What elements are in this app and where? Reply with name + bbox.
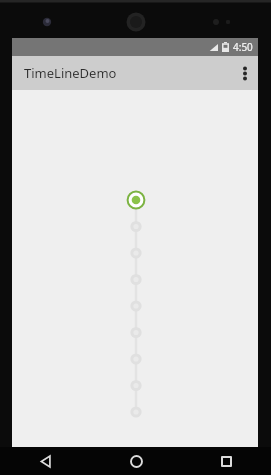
button[interactable]: Timeline start node [116, 182, 156, 218]
button[interactable]: More options [232, 56, 258, 90]
staticText: TimeLineDemo [24, 64, 117, 82]
staticText: 4:50 [233, 40, 253, 54]
button[interactable]: Recent apps [181, 447, 271, 475]
button[interactable]: Home [91, 447, 181, 475]
button[interactable]: Back [0, 447, 91, 475]
